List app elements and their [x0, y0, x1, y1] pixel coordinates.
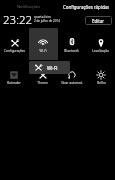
button[interactable]: Roteador	[0, 60, 28, 90]
staticText: Editar	[92, 18, 105, 24]
button[interactable]: Notificações	[0, 0, 57, 13]
staticText: Wi-Fi	[39, 49, 47, 53]
staticText: quarta-feira	[34, 15, 51, 19]
staticText: Configurações	[4, 49, 25, 53]
staticText: Roteador	[7, 81, 21, 85]
button[interactable]: Editar	[85, 16, 112, 25]
button[interactable]: Bluetooth	[57, 28, 86, 58]
button[interactable]: Configurações	[0, 28, 28, 58]
button[interactable]: Brilho	[86, 60, 115, 90]
button[interactable]: Configurações rápidas	[57, 0, 115, 13]
staticText: Configurações rápidas	[63, 4, 110, 10]
button[interactable]: Localização	[86, 28, 115, 58]
staticText: Wi-Fi	[47, 65, 58, 71]
staticText: Bluetooth	[64, 49, 79, 53]
staticText: Notificações	[17, 4, 41, 9]
staticText: Localização	[92, 49, 109, 53]
staticText: 23:22	[3, 12, 33, 28]
button[interactable]: Girar automat.	[57, 60, 86, 90]
staticText: Girar automat.	[61, 81, 83, 85]
button[interactable]: Wi-Fi	[28, 28, 57, 58]
staticText: 2 de julho de 2014	[34, 19, 60, 23]
staticText: Throne	[37, 81, 48, 85]
button[interactable]: Wi-Fi	[29, 61, 70, 74]
staticText: Brilho	[97, 81, 106, 85]
button[interactable]: Throne	[28, 60, 57, 90]
